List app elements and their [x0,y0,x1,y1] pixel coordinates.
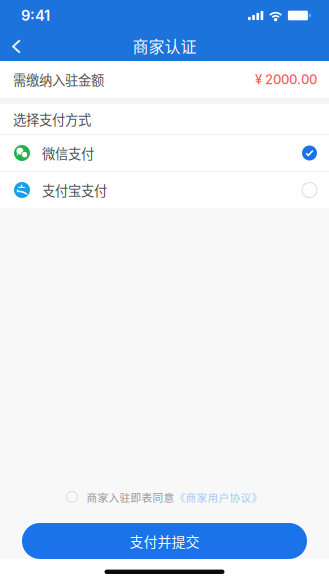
button[interactable]: Back [0,29,33,59]
staticText: 支付宝支付 [42,180,107,200]
button[interactable]: 支付宝支付 [0,172,329,208]
staticText: 微信支付 [42,143,94,163]
staticText: 选择支付方式 [13,109,91,129]
staticText: 商家入驻即表同意 [86,489,174,505]
staticText: 商家认证 [132,34,196,57]
staticText: 支付并提交 [129,531,199,551]
button[interactable]: 支付并提交 [22,523,307,559]
staticText: 9:41 [21,7,50,24]
staticText: 需缴纳入驻金额 [13,70,104,89]
staticText: 《商家用户协议》 [174,489,262,505]
staticText: ¥ 2000.00 [255,72,317,87]
button[interactable]: 商家入驻即表同意 [56,485,272,509]
button[interactable]: 微信支付 [0,135,329,171]
